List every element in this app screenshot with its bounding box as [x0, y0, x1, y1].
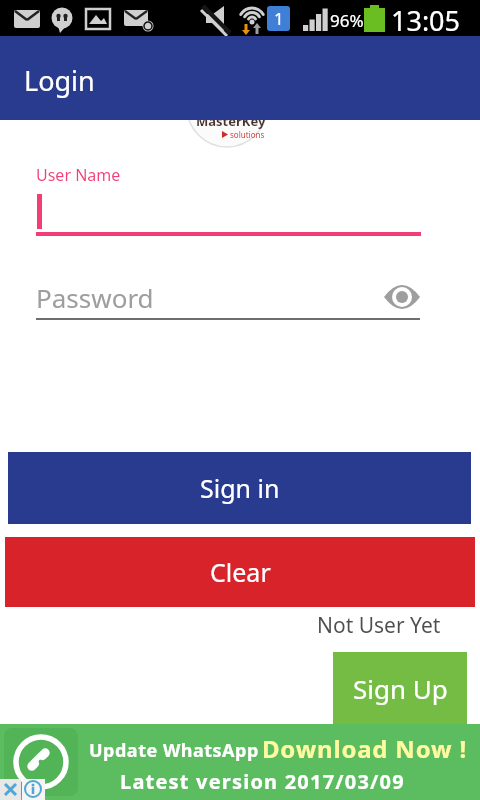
staticText: Clear [210, 555, 271, 589]
staticText: Update WhatsApp [89, 738, 259, 763]
staticText: MasterKey [196, 112, 266, 130]
staticText: Download Now ! [262, 732, 467, 765]
button[interactable] [0, 779, 21, 800]
staticText: Sign in [200, 471, 280, 505]
staticText: User Name [36, 164, 121, 186]
button[interactable]: Sign in [8, 452, 471, 524]
button[interactable] [384, 284, 420, 310]
button[interactable]: Update WhatsApp [0, 724, 480, 800]
staticText: Login [24, 62, 95, 99]
staticText: Sign Up [353, 671, 448, 706]
staticText: solutions [230, 129, 265, 140]
staticText: Latest version 2017/03/09 [120, 768, 405, 795]
staticText: 1 [274, 7, 284, 30]
button[interactable]: Clear [5, 537, 475, 607]
staticText: 96% [330, 9, 364, 32]
button[interactable]: Sign Up [333, 652, 467, 724]
staticText: Not User Yet [317, 611, 441, 640]
staticText: Password [36, 280, 154, 315]
button[interactable] [22, 779, 45, 800]
staticText: 13:05 [391, 2, 461, 38]
